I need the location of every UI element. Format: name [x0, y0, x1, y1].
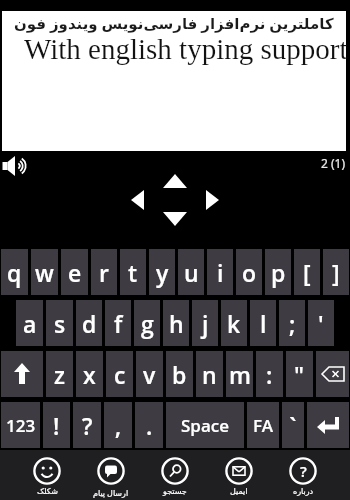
staticText: m — [229, 359, 251, 390]
staticText: w — [35, 257, 54, 288]
button[interactable]: i — [207, 249, 233, 295]
staticText: v — [143, 359, 156, 390]
staticText: شکلک — [37, 487, 58, 496]
button[interactable]: a — [16, 300, 43, 346]
staticText: ` — [286, 410, 300, 441]
button[interactable]: q — [1, 249, 28, 295]
button[interactable] — [316, 351, 349, 397]
staticText: ? — [300, 461, 307, 481]
staticText: q — [7, 257, 22, 288]
button[interactable]: d — [76, 300, 102, 346]
button[interactable]: u — [178, 249, 204, 295]
staticText: o — [242, 257, 257, 288]
staticText: . — [146, 410, 153, 441]
staticText: ] — [332, 257, 340, 288]
button[interactable]: l — [250, 300, 276, 346]
staticText: ? — [82, 410, 93, 441]
button[interactable]: 123 — [1, 402, 40, 448]
staticText: ایمیل — [230, 487, 248, 496]
staticText: 2 (1) — [321, 155, 346, 171]
staticText: a — [23, 308, 37, 339]
staticText: h — [169, 308, 184, 339]
button[interactable]: p — [265, 249, 291, 295]
button[interactable]: ایمیل — [211, 457, 267, 496]
button[interactable]: ? — [275, 457, 331, 496]
staticText: Space — [181, 414, 230, 437]
staticText: e — [68, 257, 82, 288]
button[interactable]: ' — [308, 300, 334, 346]
staticText: c — [114, 359, 126, 390]
button[interactable]: n — [196, 351, 223, 397]
button[interactable]: b — [166, 351, 193, 397]
staticText: [ — [303, 257, 311, 288]
button[interactable]: g — [134, 300, 160, 346]
button[interactable] — [307, 402, 349, 448]
staticText: p — [271, 257, 286, 288]
button[interactable]: f — [105, 300, 131, 346]
staticText: n — [202, 359, 217, 390]
staticText: ' — [318, 308, 324, 339]
staticText: r — [99, 257, 109, 288]
button[interactable]: [ — [294, 249, 320, 295]
staticText: With english typing support — [24, 33, 348, 65]
button[interactable]: y — [149, 249, 175, 295]
button[interactable]: v — [136, 351, 163, 397]
staticText: y — [156, 257, 169, 288]
button[interactable]: s — [46, 300, 73, 346]
button[interactable]: o — [236, 249, 262, 295]
button[interactable]: e — [61, 249, 88, 295]
staticText: z — [54, 359, 65, 390]
staticText: s — [54, 308, 66, 339]
staticText: ! — [53, 410, 60, 441]
staticText: i — [217, 257, 224, 288]
button[interactable]: Space — [166, 402, 244, 448]
button[interactable]: , — [104, 402, 132, 448]
staticText: " — [294, 359, 305, 390]
staticText: کاملترین نرم‌افزار فارسی‌نویس ویندوز فون — [14, 13, 334, 33]
staticText: l — [260, 308, 267, 339]
staticText: t — [128, 257, 138, 288]
button[interactable]: c — [106, 351, 133, 397]
staticText: f — [114, 308, 123, 339]
button[interactable]: m — [226, 351, 253, 397]
button[interactable]: . — [135, 402, 163, 448]
button[interactable]: ? — [73, 402, 101, 448]
button[interactable]: k — [221, 300, 247, 346]
staticText: ارسال پیام — [93, 487, 129, 498]
button[interactable]: z — [46, 351, 73, 397]
staticText: g — [141, 308, 154, 339]
button[interactable]: ; — [279, 300, 305, 346]
button[interactable]: : — [256, 351, 283, 397]
staticText: , — [115, 410, 122, 441]
staticText: b — [172, 359, 187, 390]
staticText: d — [82, 308, 97, 339]
staticText: u — [184, 257, 199, 288]
button[interactable]: جستجو — [147, 457, 203, 496]
button[interactable]: w — [31, 249, 58, 295]
staticText: j — [202, 308, 209, 339]
button[interactable]: شکلک — [19, 457, 75, 496]
button[interactable]: ! — [43, 402, 70, 448]
staticText: ; — [289, 308, 296, 339]
button[interactable]: ` — [282, 402, 304, 448]
button[interactable]: r — [91, 249, 117, 295]
button[interactable]: h — [163, 300, 189, 346]
staticText: x — [83, 359, 96, 390]
button[interactable]: t — [120, 249, 146, 295]
button[interactable]: " — [286, 351, 313, 397]
staticText: FA — [253, 414, 273, 437]
staticText: درباره — [293, 487, 314, 496]
button[interactable]: FA — [247, 402, 279, 448]
button[interactable] — [1, 351, 43, 397]
button[interactable]: x — [76, 351, 103, 397]
staticText: 123 — [6, 414, 36, 437]
staticText: جستجو — [163, 487, 187, 496]
staticText: : — [266, 359, 273, 390]
button[interactable]: ارسال پیام — [83, 457, 139, 498]
staticText: k — [227, 308, 241, 339]
button[interactable]: ] — [323, 249, 349, 295]
button[interactable]: j — [192, 300, 218, 346]
